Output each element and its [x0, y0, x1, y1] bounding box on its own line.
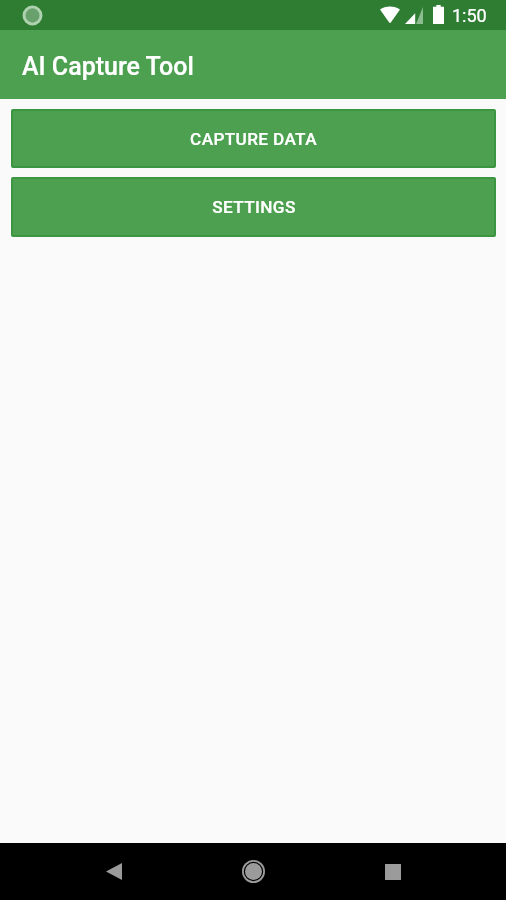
button[interactable]: CAPTURE DATA	[11, 109, 496, 168]
staticText: CAPTURE DATA	[190, 129, 317, 149]
button[interactable]: SETTINGS	[11, 177, 496, 237]
button[interactable]: Recent apps	[358, 843, 428, 900]
staticText: 1:50	[452, 5, 487, 26]
staticText: AI Capture Tool	[22, 52, 194, 81]
button[interactable]: Home	[218, 843, 288, 900]
staticText: SETTINGS	[212, 197, 296, 217]
button[interactable]: Back	[79, 843, 149, 900]
